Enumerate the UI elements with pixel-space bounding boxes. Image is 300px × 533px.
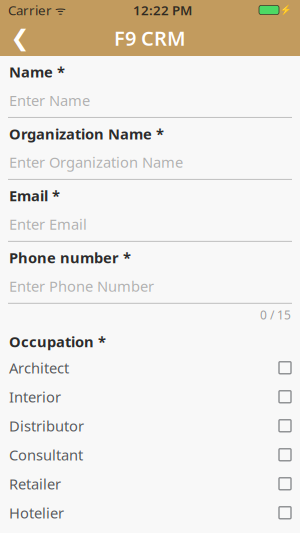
button[interactable]: Enter Organization Name xyxy=(0,143,300,179)
staticText: Interior xyxy=(9,387,61,406)
button[interactable]: Distributor xyxy=(0,411,300,440)
staticText: ᯤ xyxy=(52,2,66,18)
staticText: Enter Phone Number xyxy=(9,276,154,296)
staticText: Enter Name xyxy=(9,90,90,110)
staticText: 12:22 PM xyxy=(133,1,192,19)
button[interactable]: Enter Name xyxy=(0,81,300,117)
staticText: Name * xyxy=(9,62,65,81)
staticText: Enter Email xyxy=(9,214,87,234)
staticText: 0 / 15 xyxy=(260,307,291,323)
button[interactable]: Retailer xyxy=(0,469,300,498)
staticText: ⚡ xyxy=(280,5,292,15)
button[interactable]: Architect xyxy=(0,353,300,382)
button[interactable]: Enter Phone Number xyxy=(0,267,300,303)
staticText: Architect xyxy=(9,358,69,377)
staticText: Organization Name * xyxy=(9,124,164,143)
staticText: Enter Organization Name xyxy=(9,152,183,172)
staticText: Phone number * xyxy=(9,248,131,267)
staticText: Hotelier xyxy=(9,503,64,522)
button[interactable]: Back xyxy=(0,20,40,56)
staticText: Retailer xyxy=(9,474,61,493)
staticText: Consultant xyxy=(9,445,83,464)
staticText: ❮ xyxy=(10,25,29,51)
button[interactable]: Interior xyxy=(0,382,300,411)
button[interactable]: Enter Email xyxy=(0,205,300,241)
button[interactable]: Hotelier xyxy=(0,498,300,527)
staticText: Occupation * xyxy=(9,332,106,351)
staticText: Email * xyxy=(9,186,60,205)
staticText: Carrier xyxy=(8,1,52,19)
staticText: F9 CRM xyxy=(114,25,186,51)
staticText: Distributor xyxy=(9,416,84,435)
button[interactable]: Consultant xyxy=(0,440,300,469)
